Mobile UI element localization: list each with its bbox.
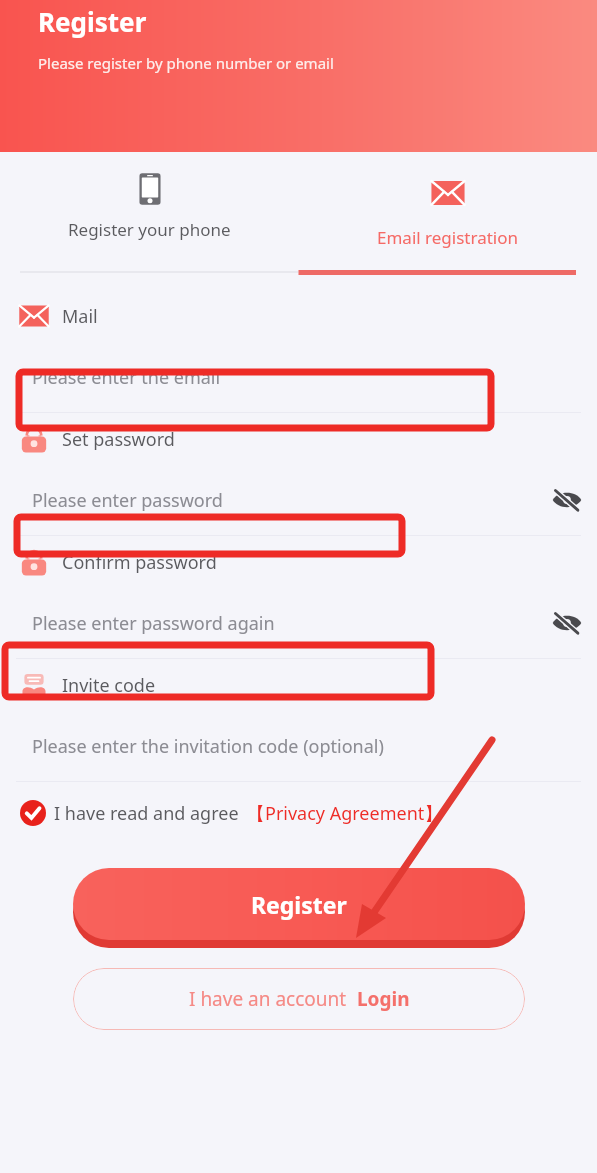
staticText: Please enter the email	[32, 365, 221, 390]
staticText: Login	[357, 986, 410, 1012]
button[interactable]: I have an account	[73, 968, 525, 1030]
staticText: Register	[251, 889, 347, 920]
button[interactable]: Please enter password	[0, 465, 597, 535]
staticText: Please enter password again	[32, 611, 275, 636]
staticText: Register your phone	[68, 218, 231, 241]
button[interactable]: Email registration	[298, 152, 597, 270]
staticText: Please register by phone number or email	[38, 53, 334, 73]
staticText: Confirm password	[62, 550, 217, 575]
staticText: Please enter the invitation code (option…	[32, 734, 384, 759]
staticText: I have an account	[189, 986, 347, 1012]
staticText: Invite code	[62, 673, 156, 698]
button[interactable]: Please enter the invitation code (option…	[0, 711, 597, 781]
button[interactable]: Toggle password visibility	[537, 470, 597, 530]
button[interactable]: Please enter password again	[0, 588, 597, 658]
staticText: Email registration	[377, 226, 518, 249]
staticText: Mail	[62, 304, 98, 329]
button[interactable]: Please enter the email	[0, 342, 597, 412]
staticText: Set password	[62, 427, 175, 452]
button[interactable]: Register	[73, 868, 525, 948]
staticText: Register	[38, 4, 147, 39]
staticText: I have read and agree	[54, 801, 239, 826]
button[interactable]: I have read and agree	[20, 786, 597, 840]
staticText: Please enter password	[32, 488, 223, 513]
staticText: 【Privacy Agreement】	[247, 801, 443, 826]
button[interactable]: Register your phone	[0, 152, 298, 270]
button[interactable]: Toggle password visibility	[537, 593, 597, 653]
